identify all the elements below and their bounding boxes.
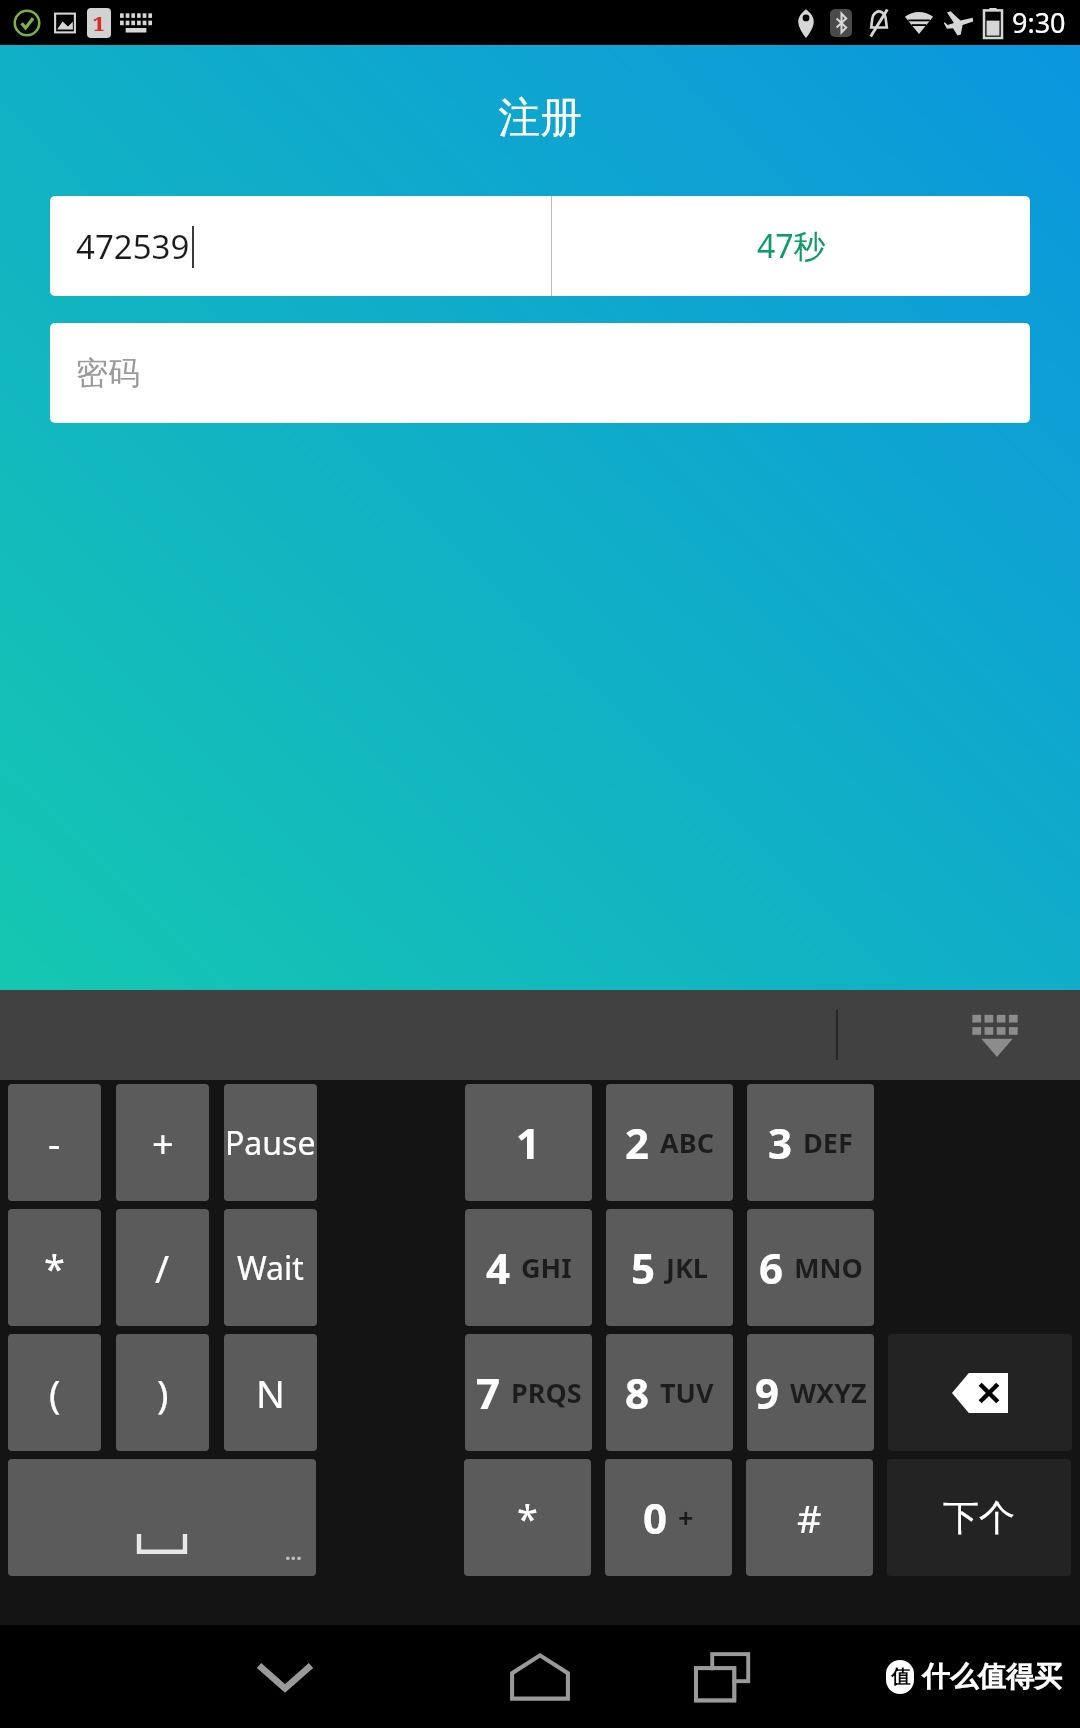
staticText: 什么值得买 [922,1659,1062,1694]
button[interactable]: Home [495,1632,585,1722]
button[interactable]: / [116,1209,209,1326]
staticText: 4 [486,1239,511,1296]
staticText: 6 [759,1239,784,1296]
button[interactable]: Hide keyboard [922,990,1072,1080]
staticText: Wait [237,1246,304,1290]
staticText: 1 [516,1114,541,1171]
button[interactable]: 密码 [50,323,1030,423]
button[interactable]: * [8,1209,101,1326]
staticText: 1 [93,10,105,37]
staticText: * [44,1242,65,1294]
button[interactable]: ( [8,1334,101,1451]
button[interactable]: 4 [465,1209,592,1326]
staticText: 2 [625,1114,650,1171]
staticText: ) [157,1367,169,1419]
staticText: / [155,1242,170,1294]
button[interactable]: + [116,1084,209,1201]
staticText: N [256,1367,285,1419]
staticText: TUV [660,1374,714,1411]
staticText: 3 [768,1114,793,1171]
button[interactable]: - [8,1084,101,1201]
button[interactable]: 3 [747,1084,874,1201]
button[interactable]: 7 [465,1334,592,1451]
button[interactable]: 6 [747,1209,874,1326]
button[interactable]: 472539 [50,196,551,296]
staticText: 值 [891,1665,910,1689]
staticText: 47秒 [757,224,826,268]
button[interactable]: Wait [224,1209,317,1326]
staticText: 下个 [943,1495,1015,1540]
button[interactable]: 下个 [887,1459,1071,1576]
staticText: ( [49,1367,61,1419]
staticText: 5 [631,1239,656,1296]
button[interactable]: Recent apps [680,1632,770,1722]
staticText: PRQS [511,1374,582,1411]
staticText: # [797,1492,822,1544]
staticText: MNO [794,1249,863,1286]
staticText: JKL [666,1249,708,1286]
staticText: * [517,1492,538,1544]
staticText: GHI [521,1249,572,1286]
staticText: 密码 [76,353,140,393]
button[interactable]: 47秒 [552,196,1030,296]
button[interactable]: 5 [606,1209,733,1326]
staticText: ... [285,1539,302,1566]
staticText: 8 [625,1364,650,1421]
button[interactable]: 2 [606,1084,733,1201]
staticText: 9:30 [1012,4,1066,41]
button[interactable]: Space [8,1459,316,1576]
staticText: DEF [803,1124,853,1161]
staticText: 7 [476,1364,501,1421]
button[interactable]: N [224,1334,317,1451]
button[interactable]: 0 [605,1459,732,1576]
staticText: + [152,1117,174,1169]
button[interactable]: Pause [224,1084,317,1201]
staticText: 注册 [0,92,1080,145]
button[interactable]: ) [116,1334,209,1451]
staticText: 0 [643,1489,668,1546]
staticText: ABC [660,1124,714,1161]
button[interactable]: 9 [747,1334,874,1451]
staticText: 472539 [76,224,190,269]
button[interactable]: Backspace [888,1334,1072,1451]
staticText: WXYZ [790,1374,867,1411]
staticText: - [48,1117,61,1169]
staticText: + [678,1499,694,1536]
staticText: 9 [755,1364,780,1421]
button[interactable]: 8 [606,1334,733,1451]
button[interactable]: 1 [465,1084,592,1201]
staticText: Pause [225,1121,316,1165]
button[interactable]: Back [240,1632,330,1722]
button[interactable]: * [464,1459,591,1576]
button[interactable]: # [746,1459,873,1576]
